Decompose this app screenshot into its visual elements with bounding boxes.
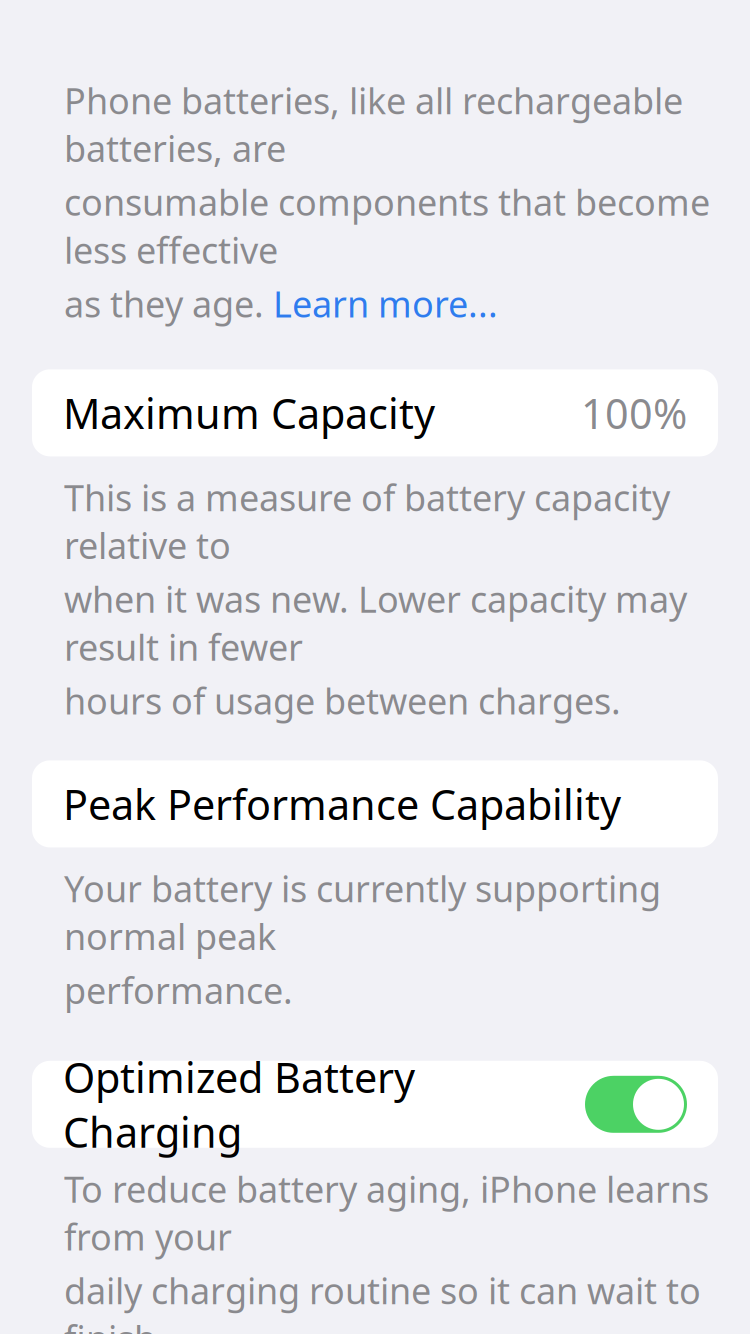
staticText: Phone batteries, like all rechargeable b… xyxy=(64,76,683,172)
staticText: This is a measure of battery capacity re… xyxy=(64,473,670,569)
staticText: when it was new. Lower capacity may resu… xyxy=(64,575,687,671)
staticText: as they age. xyxy=(64,280,273,327)
staticText: 100% xyxy=(581,385,687,440)
staticText: Peak Performance Capability xyxy=(63,776,621,831)
button[interactable]: Learn more... xyxy=(273,280,498,327)
staticText: daily charging routine so it can wait to… xyxy=(64,1266,701,1334)
button[interactable]: Peak Performance Capability xyxy=(32,760,718,847)
button[interactable]: Maximum Capacity xyxy=(32,369,718,456)
staticText: Your battery is currently supporting nor… xyxy=(64,864,661,960)
staticText: consumable components that become less e… xyxy=(64,178,710,274)
staticText: performance. xyxy=(64,966,293,1014)
staticText: Learn more... xyxy=(273,280,498,327)
staticText: Maximum Capacity xyxy=(63,385,435,440)
staticText: Optimized Battery Charging xyxy=(63,1049,415,1159)
staticText: hours of usage between charges. xyxy=(64,677,621,724)
button[interactable]: Optimized Battery Charging xyxy=(32,1061,718,1148)
staticText: To reduce battery aging, iPhone learns f… xyxy=(64,1165,709,1260)
